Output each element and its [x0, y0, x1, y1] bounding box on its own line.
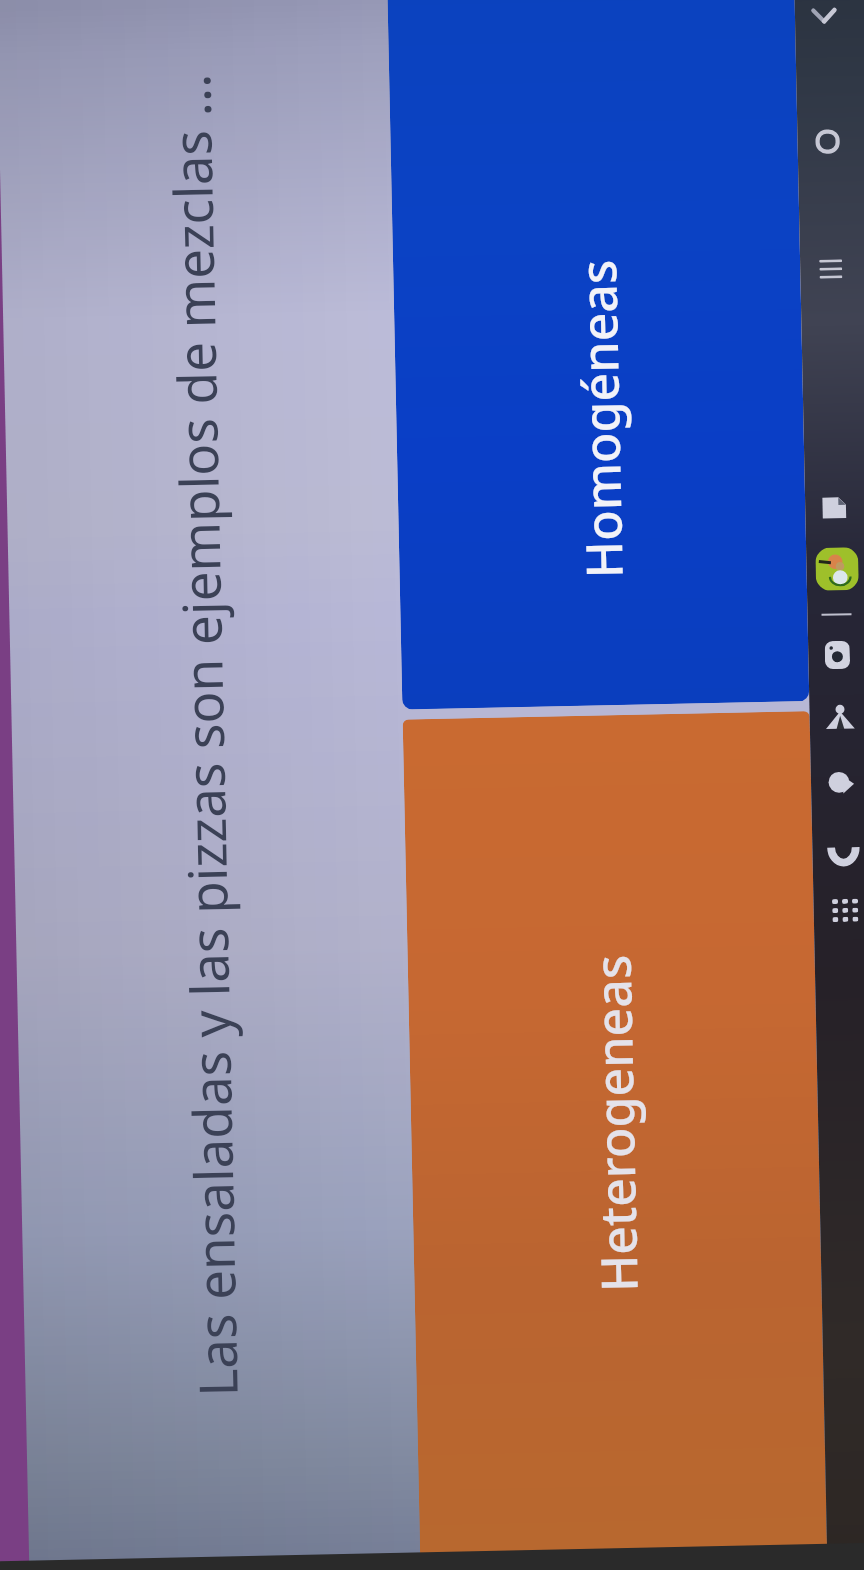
button[interactable]: Homogéneas	[387, 0, 809, 710]
button[interactable]: Recent apps	[804, 243, 857, 296]
button[interactable]: Camera	[811, 629, 864, 682]
button[interactable]: Phone	[817, 824, 864, 877]
button[interactable]: Recipe app	[810, 543, 863, 596]
button[interactable]: Files	[808, 481, 861, 534]
button[interactable]: All apps	[818, 884, 864, 937]
button[interactable]: Heterogeneas	[403, 711, 827, 1560]
button[interactable]: Gallery	[813, 691, 864, 744]
button[interactable]: Messages	[814, 757, 864, 810]
button[interactable]: Back	[797, 0, 850, 42]
staticText: Las ensaladas y las pizzas son ejemplos …	[153, 73, 253, 1397]
staticText: Homogéneas	[563, 259, 638, 579]
staticText: Heterogeneas	[578, 954, 653, 1293]
button[interactable]: Home	[801, 115, 854, 168]
